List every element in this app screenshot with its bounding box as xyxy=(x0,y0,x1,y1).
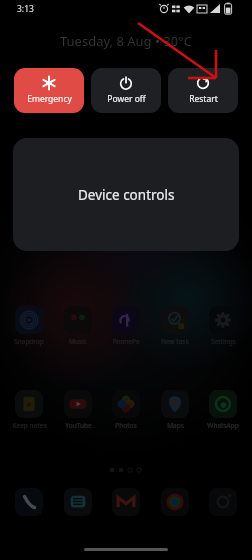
button[interactable]: WhatsApp xyxy=(201,390,245,430)
button[interactable]: Emergency xyxy=(14,68,84,113)
button[interactable]: Photos xyxy=(104,390,148,430)
staticText: Maps xyxy=(167,421,184,430)
button[interactable]: Keep notes xyxy=(7,390,51,430)
staticText: WhatsApp xyxy=(207,421,239,430)
button[interactable]: Device controls xyxy=(13,138,239,251)
button[interactable]: Settings xyxy=(201,306,245,346)
button[interactable]: Restart xyxy=(168,68,238,113)
button[interactable] xyxy=(7,488,51,528)
button[interactable] xyxy=(56,488,100,528)
staticText: Device controls xyxy=(78,186,175,204)
staticText: YouTube xyxy=(65,421,92,430)
button[interactable] xyxy=(10,138,54,178)
staticText: 3:13 xyxy=(17,3,34,15)
staticText: Photos xyxy=(115,421,137,430)
button[interactable]: PhonePe xyxy=(104,306,148,346)
staticText: Power off xyxy=(107,93,146,105)
staticText: Emergency xyxy=(27,93,72,105)
button[interactable]: New task xyxy=(153,306,197,346)
staticText: Snapdrop xyxy=(14,337,44,346)
button[interactable] xyxy=(198,138,242,178)
button[interactable]: YouTube xyxy=(56,390,100,430)
button[interactable] xyxy=(201,488,245,528)
button[interactable]: Maps xyxy=(153,390,197,430)
button[interactable]: Music xyxy=(56,306,100,346)
button[interactable] xyxy=(104,488,148,528)
staticText: Keep notes xyxy=(12,421,47,430)
staticText: Settings xyxy=(211,337,236,346)
button[interactable]: Snapdrop xyxy=(7,306,51,346)
staticText: PhonePe xyxy=(112,337,140,346)
staticText: Music xyxy=(69,337,87,346)
button[interactable] xyxy=(153,488,197,528)
staticText: Tuesday, 8 Aug • 30°C xyxy=(60,32,192,50)
button[interactable]: Power off xyxy=(91,68,161,113)
staticText: Restart xyxy=(189,93,218,105)
staticText: New task xyxy=(161,337,189,346)
